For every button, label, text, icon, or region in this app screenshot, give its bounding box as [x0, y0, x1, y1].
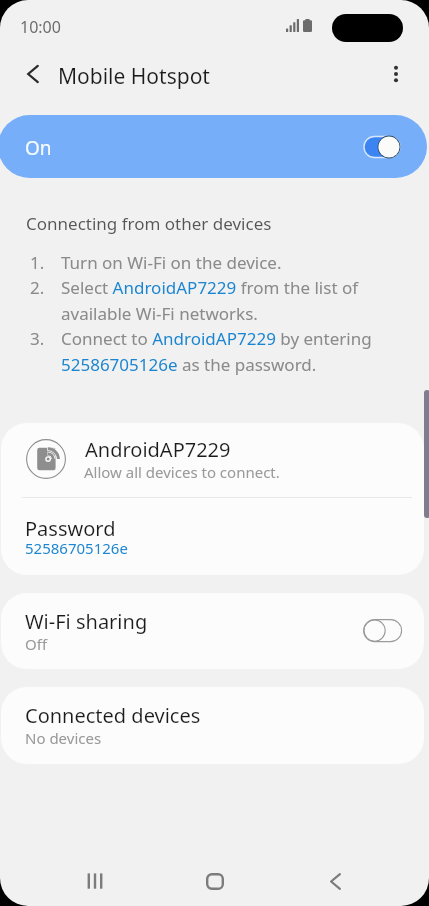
staticText: Wi-Fi sharing	[25, 608, 148, 635]
staticText: No devices	[25, 728, 102, 748]
button[interactable]: Password	[1, 498, 424, 575]
staticText: Connect to AndroidAP7229 by entering 525…	[61, 327, 375, 376]
staticText: Mobile Hotspot	[58, 62, 210, 91]
staticText: Allow all devices to connect.	[84, 462, 280, 482]
staticText: Off	[25, 634, 48, 654]
button[interactable]: Wi-Fi sharing	[1, 593, 424, 669]
staticText: On	[25, 135, 52, 161]
button[interactable]: More options	[374, 52, 418, 96]
staticText: Connected devices	[25, 702, 201, 729]
button[interactable]: Back	[300, 853, 370, 906]
staticText: Connecting from other devices	[26, 212, 272, 235]
button[interactable]: AndroidAP7229	[1, 423, 424, 496]
button[interactable]: Recent apps	[60, 853, 130, 906]
button[interactable]: Home	[180, 853, 250, 906]
staticText: Password	[25, 515, 116, 542]
staticText: 52586705126e	[25, 538, 128, 558]
button[interactable]: On	[0, 115, 427, 178]
button[interactable]: Connected devices	[1, 687, 424, 764]
staticText: Select AndroidAP7229 from the list of av…	[61, 276, 375, 325]
staticText: Turn on Wi-Fi on the device.	[61, 251, 282, 274]
staticText: 2.	[30, 276, 61, 299]
staticText: 1.	[30, 251, 61, 274]
button[interactable]: Navigate up	[11, 52, 55, 96]
staticText: AndroidAP7229	[85, 436, 231, 463]
staticText: 10:00	[20, 16, 61, 38]
staticText: 3.	[30, 327, 61, 350]
